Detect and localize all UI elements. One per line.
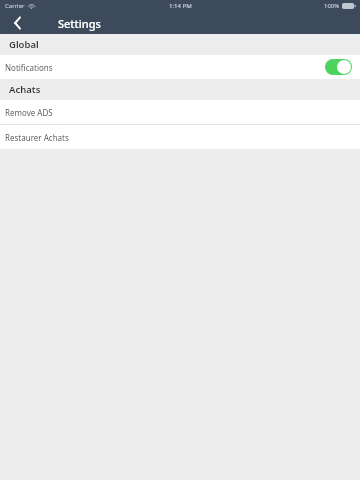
staticText: Achats (9, 83, 41, 96)
button[interactable]: Notifications toggle (325, 59, 352, 75)
staticText: 1:14 PM (169, 2, 192, 10)
button[interactable]: Remove ADS (0, 100, 360, 124)
staticText: Notifications (5, 62, 53, 73)
button[interactable]: Back (0, 12, 34, 34)
staticText: Restaurer Achats (5, 132, 69, 143)
button[interactable]: Restaurer Achats (0, 125, 360, 149)
staticText: Settings (58, 16, 101, 31)
staticText: Global (9, 38, 39, 51)
button[interactable]: Notifications (0, 55, 360, 79)
staticText: Carrier (5, 2, 25, 10)
staticText: 100% (324, 2, 340, 10)
staticText: Remove ADS (5, 107, 53, 118)
